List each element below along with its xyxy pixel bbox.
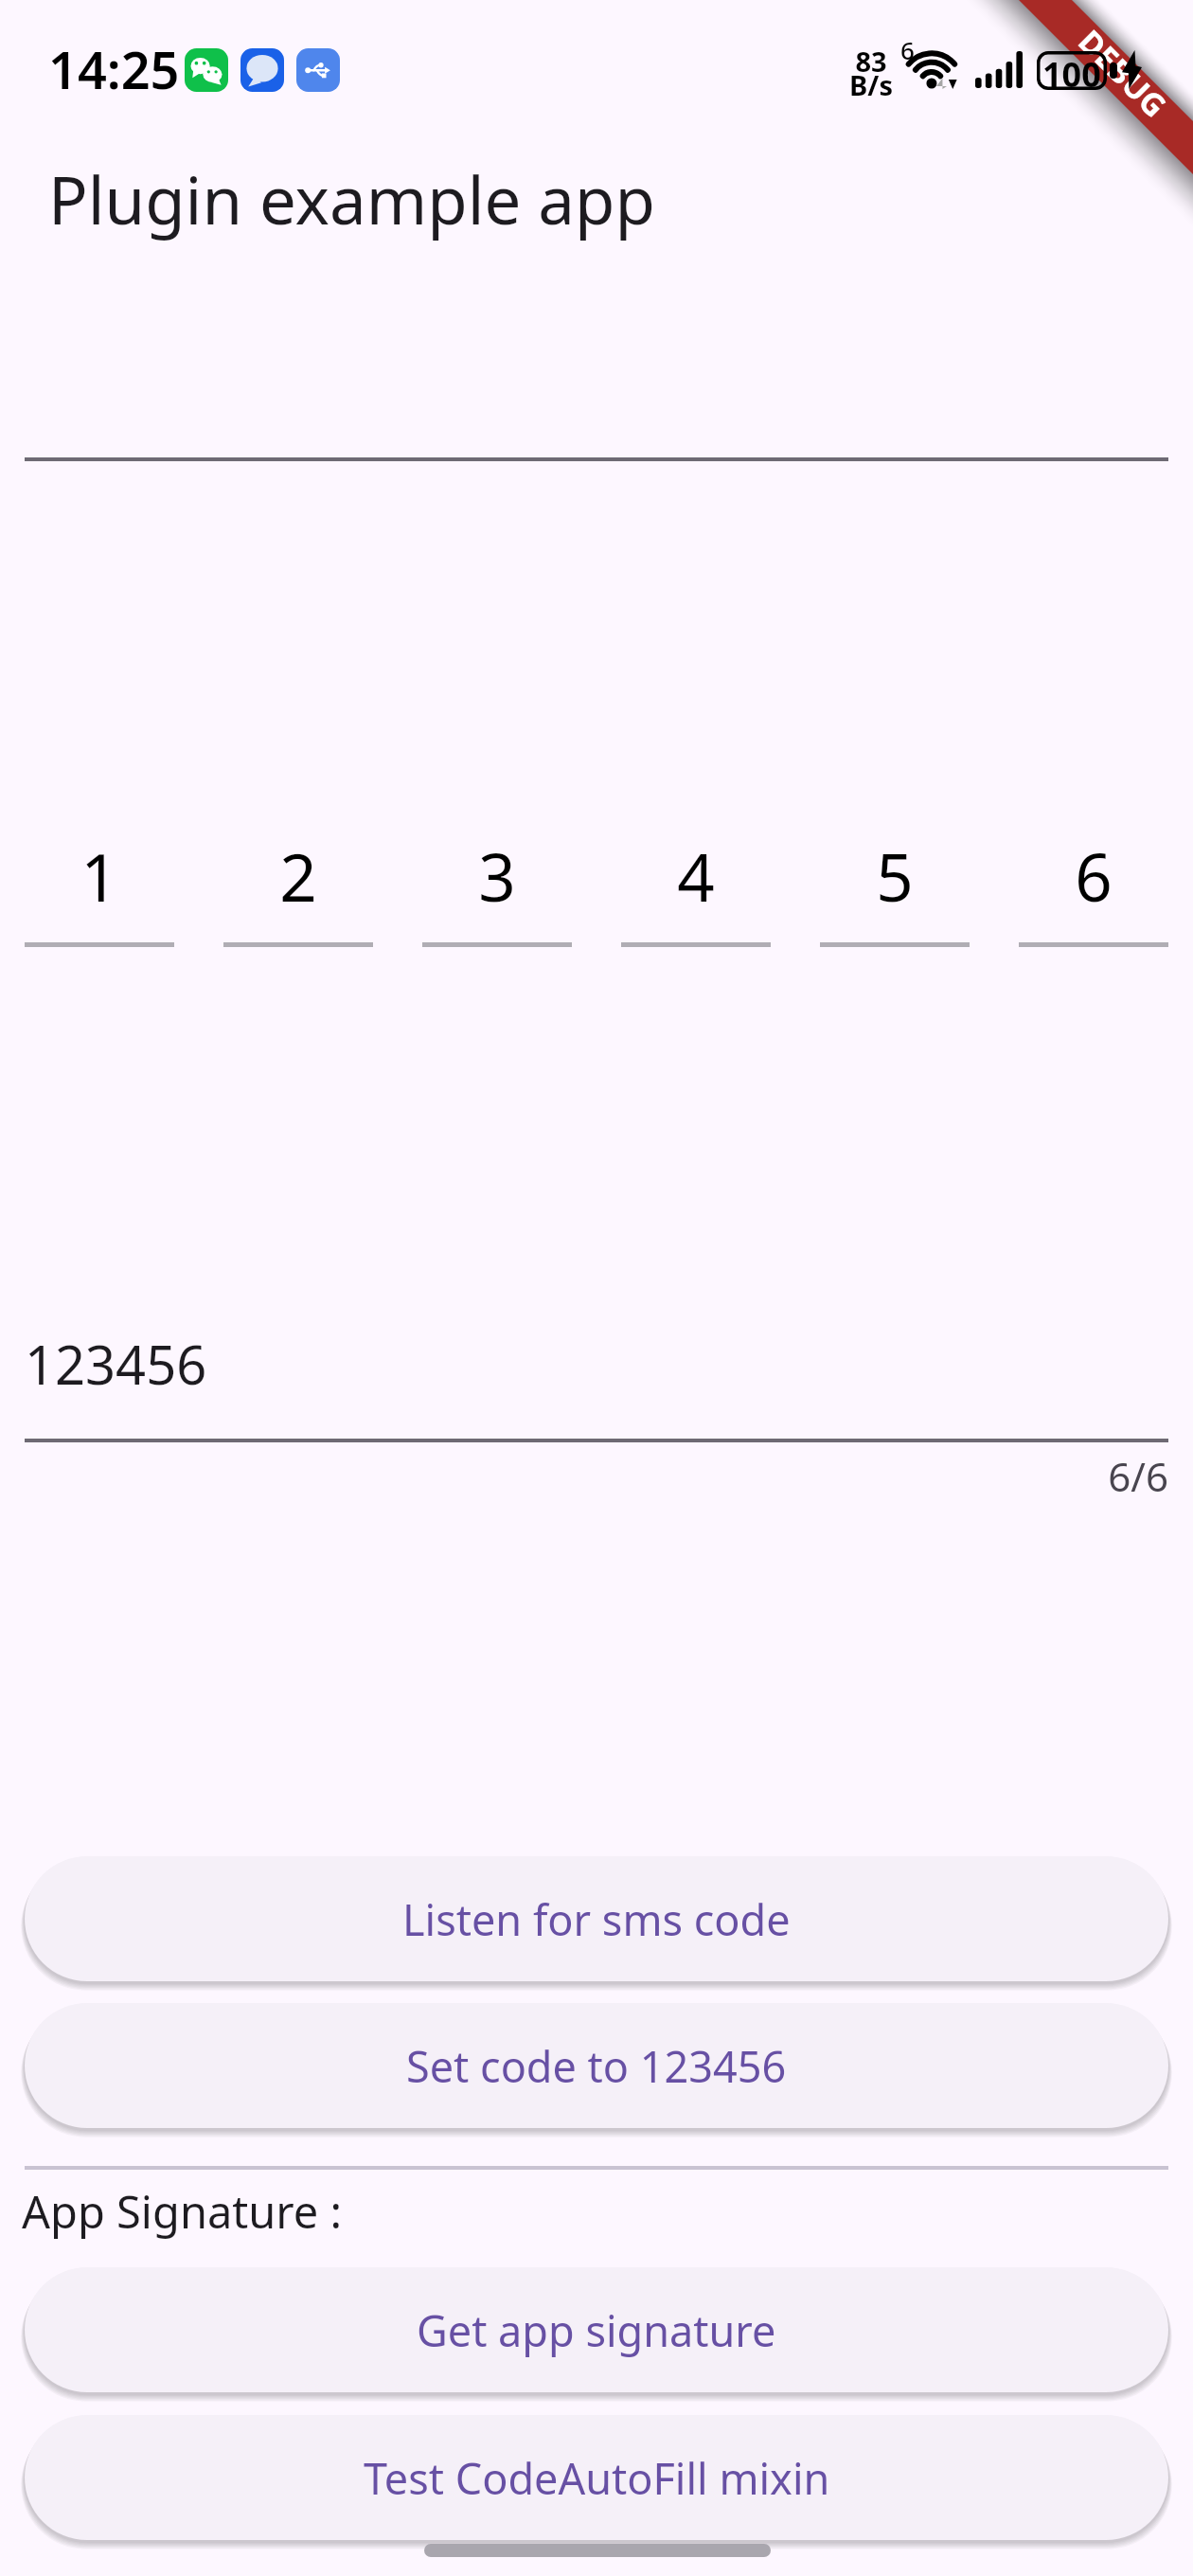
staticText: 5 bbox=[876, 832, 914, 921]
staticText: 123456 bbox=[25, 1328, 207, 1400]
button[interactable]: Phone number field bbox=[25, 355, 1168, 461]
button[interactable]: Set code to 123456 bbox=[25, 2003, 1168, 2128]
staticText: 1 bbox=[80, 832, 118, 921]
staticText: Test CodeAutoFill mixin bbox=[364, 2449, 830, 2507]
other: Wi-Fi bbox=[915, 44, 958, 89]
button[interactable]: 3 bbox=[422, 832, 572, 947]
button[interactable]: 4 bbox=[621, 832, 771, 947]
staticText: 6 bbox=[1075, 832, 1113, 921]
button[interactable]: 1 bbox=[25, 832, 174, 947]
staticText: 100 bbox=[1042, 51, 1101, 90]
staticText: 2 bbox=[279, 832, 317, 921]
button[interactable]: USB bbox=[296, 48, 340, 92]
staticText: DEBUG bbox=[1070, 20, 1176, 127]
staticText: 3 bbox=[478, 832, 516, 921]
button[interactable]: WeChat bbox=[185, 48, 228, 92]
staticText: 6 bbox=[900, 33, 915, 66]
button[interactable]: 2 bbox=[223, 832, 373, 947]
button[interactable]: Messages bbox=[240, 48, 284, 92]
staticText: 14:25 bbox=[48, 34, 180, 104]
staticText: 83 B/s bbox=[849, 43, 893, 103]
button[interactable]: Get app signature bbox=[25, 2267, 1168, 2392]
button[interactable]: Listen for sms code bbox=[25, 1856, 1168, 1981]
other: Mobile signal bbox=[975, 51, 1023, 88]
staticText: Plugin example app bbox=[48, 154, 655, 243]
staticText: App Signature : bbox=[22, 2181, 343, 2242]
staticText: Get app signature bbox=[417, 2301, 776, 2359]
other: Charging bbox=[1122, 50, 1142, 89]
staticText: Listen for sms code bbox=[402, 1890, 791, 1948]
button[interactable]: Test CodeAutoFill mixin bbox=[25, 2415, 1168, 2540]
staticText: 6/6 bbox=[25, 1449, 1168, 1503]
button[interactable]: 5 bbox=[820, 832, 970, 947]
other: Battery 100 percent bbox=[1037, 51, 1107, 90]
staticText: Set code to 123456 bbox=[406, 2037, 787, 2095]
staticText: 4 bbox=[677, 832, 715, 921]
button[interactable]: 6 bbox=[1019, 832, 1168, 947]
